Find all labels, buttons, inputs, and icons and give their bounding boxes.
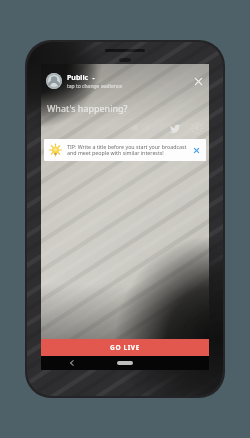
button[interactable]: Share on Twitter (169, 121, 183, 135)
button[interactable]: Back (67, 358, 77, 368)
button[interactable]: Dismiss tip (192, 146, 201, 155)
staticText: TIP: Write a title before you start your… (67, 143, 188, 157)
button[interactable]: TIP: Write a title before you start your… (44, 139, 206, 161)
button[interactable]: What's happening? (47, 102, 128, 114)
button[interactable]: Location (148, 121, 162, 135)
button[interactable]: Public (67, 73, 192, 90)
button[interactable]: Invite friends (190, 121, 204, 135)
button[interactable]: Close (192, 75, 205, 88)
staticText: tap to change audience (67, 83, 123, 90)
button[interactable]: Share (127, 121, 141, 135)
staticText: GO LIVE (110, 343, 140, 352)
button[interactable]: Home (117, 361, 133, 365)
button[interactable]: GO LIVE (41, 339, 209, 356)
other: Profile photo (46, 73, 62, 89)
staticText: Public (67, 73, 89, 83)
